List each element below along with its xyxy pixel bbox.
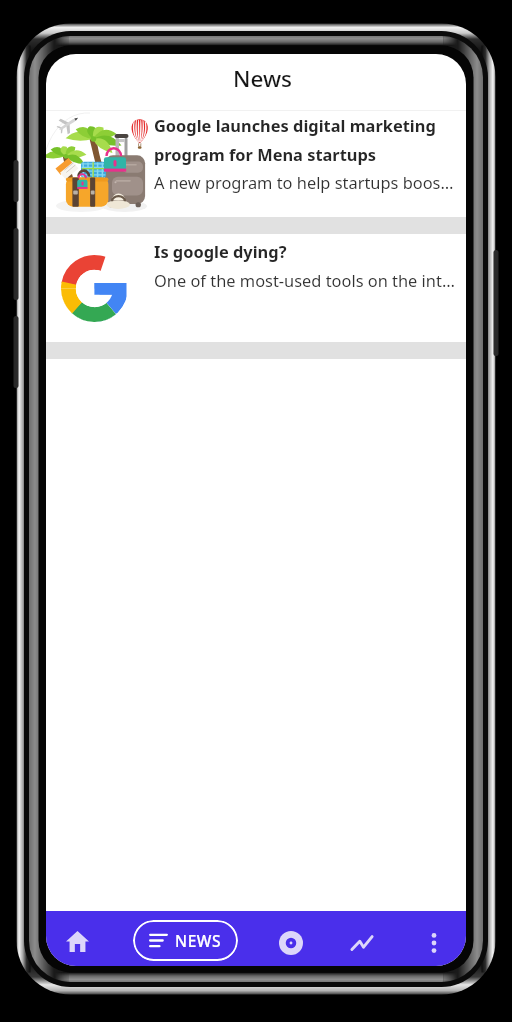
staticText: Google launches digital marketing progra…: [154, 114, 466, 166]
staticText: Is google dying?: [154, 240, 287, 262]
button[interactable]: Home: [55, 919, 99, 963]
staticText: NEWS: [175, 930, 222, 951]
button[interactable]: Discover: [269, 921, 313, 965]
button[interactable]: NEWS: [133, 920, 238, 961]
button[interactable]: Is google dying?: [46, 234, 466, 342]
button[interactable]: Google launches digital marketing progra…: [46, 111, 466, 217]
staticText: One of the most-used tools on the int…: [154, 269, 455, 291]
staticText: News: [233, 63, 293, 94]
button[interactable]: Trending: [340, 921, 384, 965]
staticText: A new program to help startups boos…: [154, 171, 454, 193]
button[interactable]: More options: [412, 921, 456, 965]
